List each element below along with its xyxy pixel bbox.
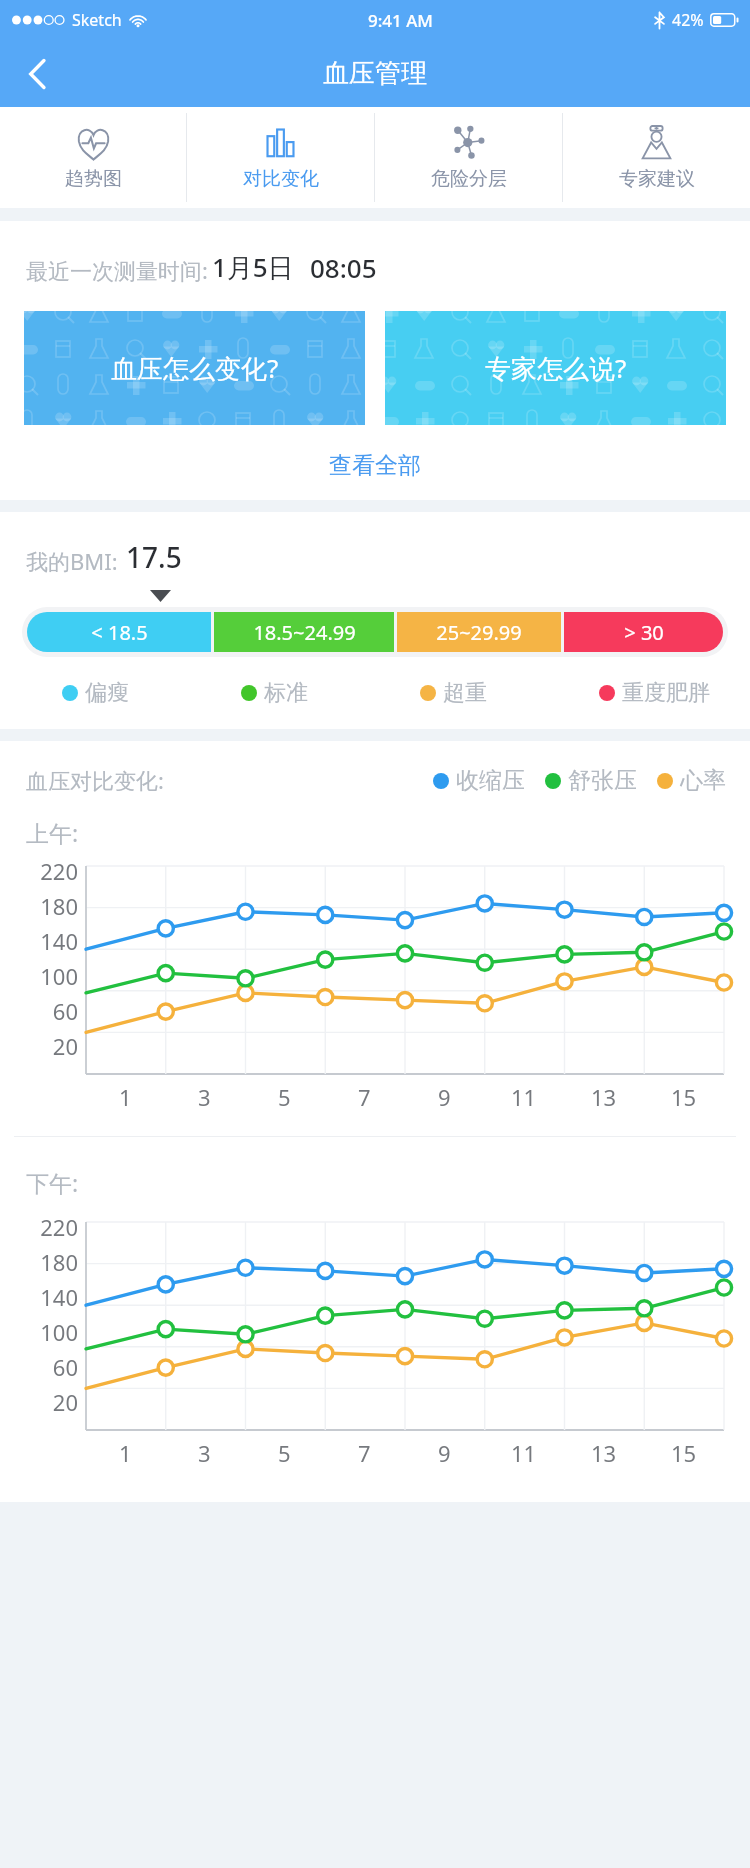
staticText: 100 — [40, 961, 78, 991]
button[interactable]: 趋势图 — [0, 107, 186, 208]
staticText: 13 — [591, 1082, 617, 1112]
staticText: 收缩压 — [456, 766, 525, 795]
staticText: 7 — [358, 1082, 371, 1112]
staticText: 最近一次测量时间: — [26, 255, 208, 285]
button[interactable]: 专家怎么说? — [385, 311, 726, 425]
staticText: 20 — [52, 1031, 78, 1061]
staticText: 趋势图 — [65, 167, 122, 191]
staticText: 1月5日 — [212, 249, 294, 285]
staticText: > 30 — [624, 619, 664, 646]
staticText: 180 — [40, 1247, 78, 1277]
staticText: 18.5~24.99 — [253, 619, 356, 646]
staticText: 标准 — [264, 679, 308, 707]
staticText: 15 — [671, 1438, 697, 1468]
staticText: 查看全部 — [329, 451, 421, 480]
staticText: 5 — [278, 1082, 291, 1112]
staticText: 7 — [358, 1438, 371, 1468]
button[interactable]: > 30 — [564, 612, 723, 652]
staticText: 11 — [511, 1438, 537, 1468]
staticText: 下午: — [26, 1167, 79, 1198]
staticText: 血压怎么变化? — [111, 350, 279, 386]
staticText: 对比变化 — [243, 167, 319, 191]
staticText: 13 — [591, 1438, 617, 1468]
staticText: 20 — [52, 1387, 78, 1417]
staticText: 上午: — [26, 817, 79, 848]
staticText: 08:05 — [310, 250, 377, 285]
staticText: 重度肥胖 — [622, 679, 710, 707]
staticText: 15 — [671, 1082, 697, 1112]
staticText: 9 — [438, 1082, 451, 1112]
staticText: 60 — [52, 996, 78, 1026]
staticText: 1 — [119, 1082, 132, 1112]
staticText: 1 — [119, 1438, 132, 1468]
button[interactable]: 查看全部 — [0, 451, 750, 480]
staticText: Sketch — [72, 9, 122, 31]
staticText: 140 — [40, 1282, 78, 1312]
staticText: 180 — [40, 891, 78, 921]
staticText: 60 — [52, 1352, 78, 1382]
button[interactable]: < 18.5 — [27, 612, 723, 652]
staticText: 专家建议 — [619, 167, 695, 191]
staticText: 220 — [40, 1212, 78, 1242]
staticText: 17.5 — [126, 538, 182, 576]
staticText: 42% — [672, 9, 704, 31]
staticText: 血压管理 — [323, 57, 427, 90]
staticText: 3 — [198, 1082, 211, 1112]
staticText: 超重 — [443, 679, 487, 707]
staticText: 心率 — [680, 766, 726, 795]
staticText: 我的BMI: — [26, 546, 118, 576]
staticText: 11 — [511, 1082, 537, 1112]
button[interactable]: 血压怎么变化? — [24, 311, 365, 425]
staticText: 专家怎么说? — [485, 350, 627, 386]
staticText: 25~29.99 — [436, 619, 522, 646]
staticText: 9 — [438, 1438, 451, 1468]
staticText: 220 — [40, 856, 78, 886]
staticText: 舒张压 — [568, 766, 637, 795]
staticText: 140 — [40, 926, 78, 956]
staticText: 偏瘦 — [85, 679, 129, 707]
staticText: < 18.5 — [91, 619, 148, 646]
button[interactable]: < 18.5 — [27, 612, 211, 652]
staticText: 100 — [40, 1317, 78, 1347]
staticText: 5 — [278, 1438, 291, 1468]
button[interactable]: 25~29.99 — [397, 612, 561, 652]
staticText: 3 — [198, 1438, 211, 1468]
button[interactable]: 18.5~24.99 — [214, 612, 394, 652]
button[interactable]: 专家建议 — [563, 107, 750, 208]
staticText: 危险分层 — [431, 167, 507, 191]
staticText: 血压对比变化: — [26, 765, 164, 795]
button[interactable]: 对比变化 — [187, 107, 374, 208]
button[interactable]: Back — [6, 43, 68, 105]
button[interactable]: 危险分层 — [375, 107, 562, 208]
staticText: 9:41 AM — [368, 9, 433, 32]
